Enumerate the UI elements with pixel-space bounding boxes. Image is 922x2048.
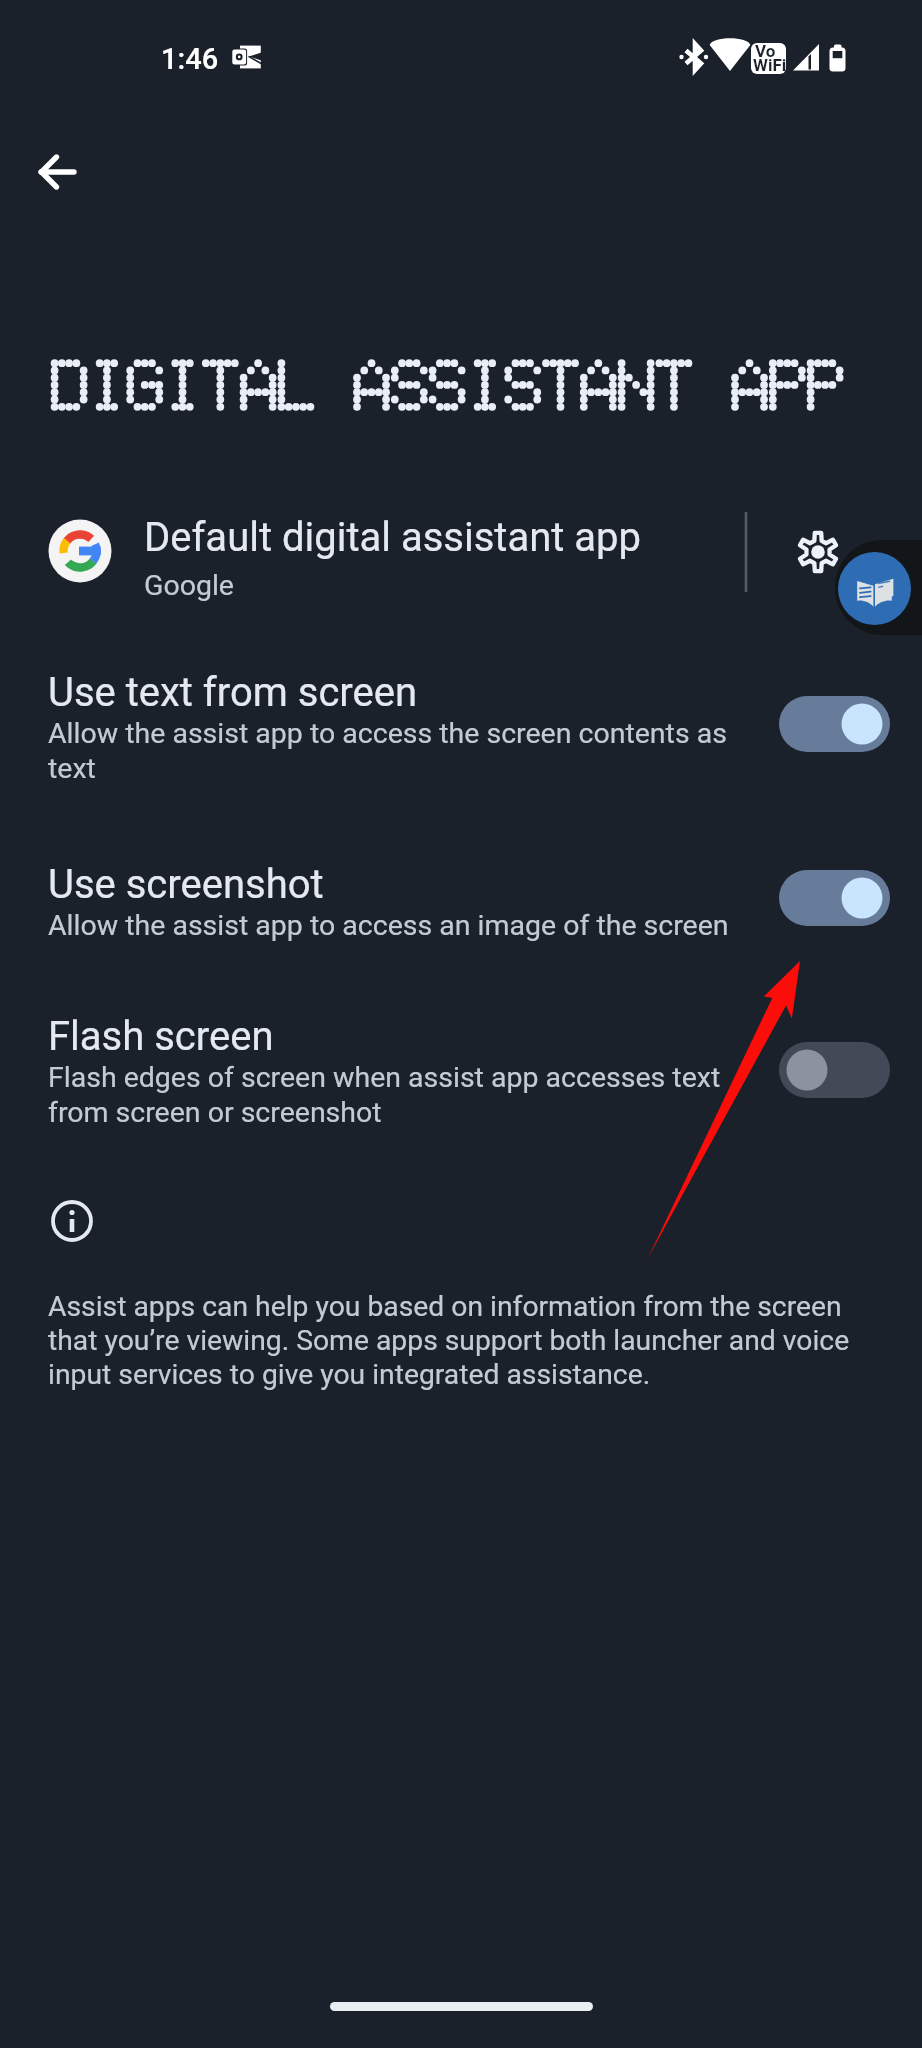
staticText: Allow the assist app to access an image … [48, 909, 729, 942]
staticText: Use screenshot [48, 861, 324, 908]
button[interactable]: Use text from screen [0, 669, 922, 829]
staticText: Allow the assist app to access the scree… [48, 717, 760, 785]
staticText: 1:46 [161, 42, 219, 76]
button[interactable]: Settings [778, 511, 858, 591]
staticText: Use text from screen [48, 669, 418, 716]
button[interactable]: Assistant bubble [835, 540, 922, 635]
staticText: Default digital assistant app [144, 514, 641, 561]
button[interactable]: Default digital assistant app [0, 501, 740, 626]
staticText: Vo [755, 41, 776, 61]
staticText: WiFi [753, 55, 787, 75]
staticText: Flash edges of screen when assist app ac… [48, 1061, 760, 1129]
staticText: Google [144, 569, 234, 602]
button[interactable]: Use screenshot [0, 861, 922, 1021]
staticText: Assist apps can help you based on inform… [48, 1290, 872, 1391]
button[interactable]: Flash screen [0, 1013, 922, 1173]
staticText: Flash screen [48, 1013, 274, 1060]
